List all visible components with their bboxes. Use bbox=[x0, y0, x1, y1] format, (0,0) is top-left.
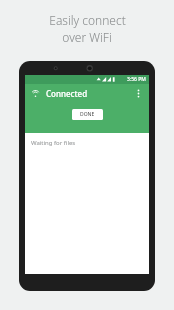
staticText: Connected bbox=[46, 88, 88, 99]
staticText: Waiting for files bbox=[31, 139, 76, 147]
button[interactable]: More options bbox=[133, 85, 144, 101]
staticText: Easily connect bbox=[49, 12, 126, 28]
staticText: over WiFi bbox=[62, 29, 112, 45]
button[interactable]: DONE bbox=[72, 109, 103, 120]
staticText: DONE bbox=[80, 111, 95, 118]
staticText: 3:56 PM bbox=[127, 76, 146, 83]
button[interactable]: WiFi connected bbox=[30, 88, 41, 99]
